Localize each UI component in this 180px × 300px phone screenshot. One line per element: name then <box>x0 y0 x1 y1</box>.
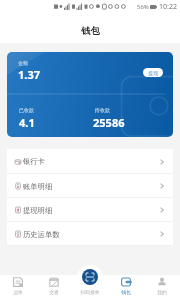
staticText: 10:22 <box>159 2 177 12</box>
button[interactable]: 提现 <box>143 68 163 77</box>
staticText: 扫码接单 <box>80 289 100 295</box>
staticText: 银行卡 <box>23 157 45 166</box>
button[interactable]: 银行卡 <box>7 149 173 174</box>
button[interactable]: 运单 <box>0 275 36 300</box>
staticText: 56% <box>137 3 149 11</box>
button[interactable]: 我的 <box>144 275 180 300</box>
staticText: 账单明细 <box>23 182 53 191</box>
staticText: 提现 <box>148 70 158 76</box>
button[interactable]: 提现明细 <box>7 198 173 222</box>
button[interactable]: 交通 <box>36 275 72 300</box>
staticText: 4.1 <box>19 115 35 130</box>
staticText: 钱包 <box>121 289 131 295</box>
staticText: 交通 <box>49 289 59 295</box>
button[interactable]: 钱包 <box>108 275 144 300</box>
staticText: 运单 <box>13 289 23 295</box>
staticText: 金额 <box>18 60 28 66</box>
staticText: 待收款 <box>95 107 110 113</box>
staticText: 我的 <box>157 289 167 295</box>
staticText: 钱包 <box>81 25 100 37</box>
staticText: 25586 <box>93 115 125 130</box>
staticText: 历史运单数 <box>23 230 60 239</box>
staticText: 已收款 <box>19 107 34 113</box>
staticText: 1.37 <box>18 67 40 82</box>
button[interactable]: 扫码接单 <box>82 269 98 285</box>
staticText: 提现明细 <box>23 206 53 215</box>
button[interactable]: 账单明细 <box>7 174 173 198</box>
button[interactable]: 历史运单数 <box>7 222 173 246</box>
button[interactable]: 扫码接单 <box>72 275 108 300</box>
